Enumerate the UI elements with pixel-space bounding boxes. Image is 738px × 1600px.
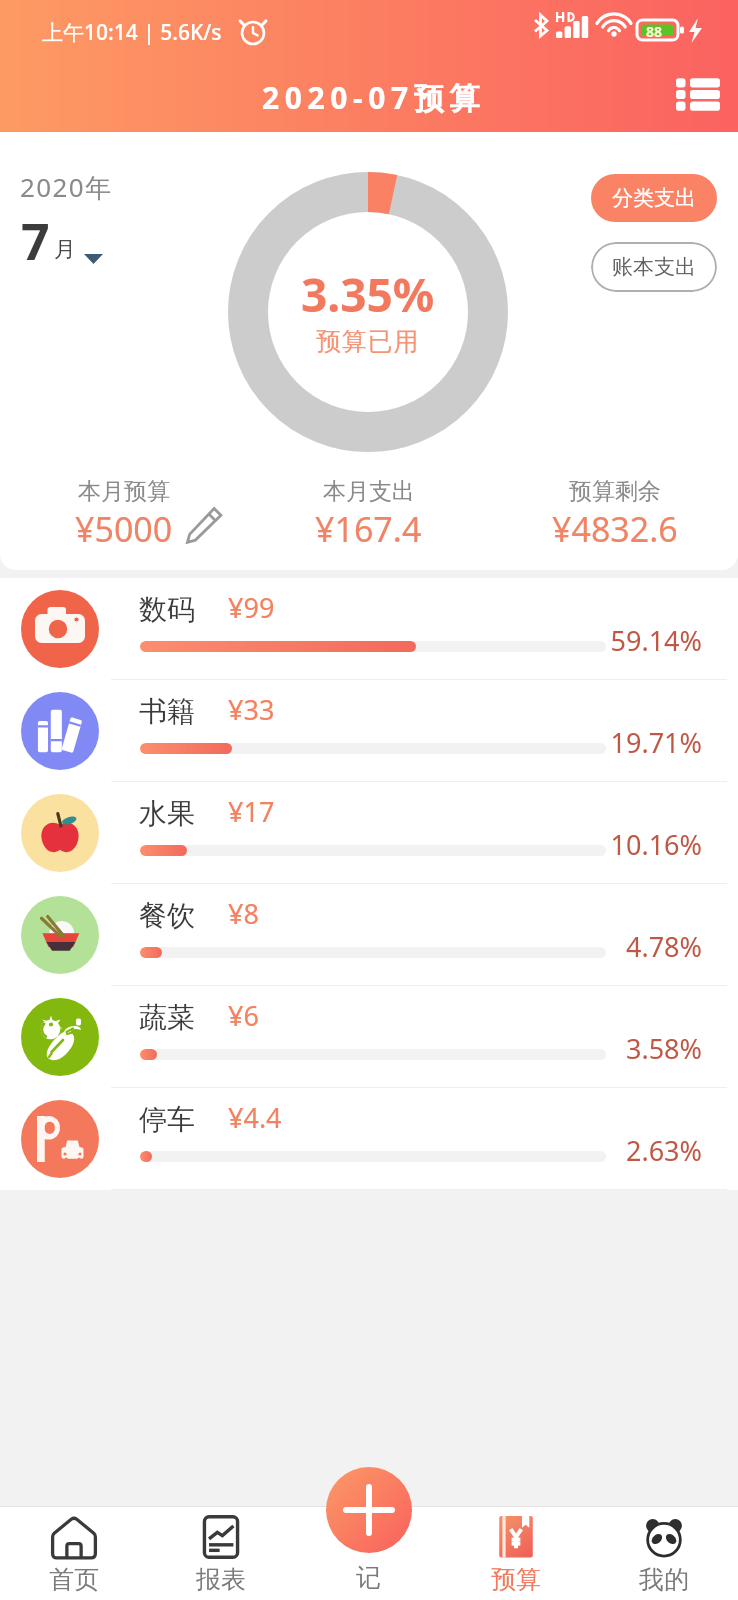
button[interactable]: 报表 [147, 1507, 294, 1600]
button[interactable]: 账本支出 [591, 242, 717, 292]
button[interactable]: Menu [664, 66, 732, 122]
staticText: ¥17 [228, 793, 275, 830]
staticText: 上午10:14 | 5.6K/s [42, 18, 222, 47]
staticText: 预算 [491, 1564, 541, 1595]
staticText: ¥4.4 [228, 1099, 282, 1136]
staticText: 数码 [139, 592, 195, 627]
staticText: 蔬菜 [139, 1000, 195, 1035]
staticText: 59.14% [586, 622, 702, 659]
button[interactable]: 我的 [590, 1507, 738, 1600]
staticText: 我的 [639, 1564, 689, 1595]
staticText: ¥33 [228, 691, 275, 728]
staticText: 账本支出 [612, 254, 696, 280]
button[interactable]: 书籍 [0, 680, 738, 782]
button[interactable]: 停车 [0, 1088, 738, 1190]
staticText: 停车 [139, 1102, 195, 1137]
staticText: ¥167.4 [315, 506, 422, 552]
staticText: ¥8 [228, 895, 259, 932]
staticText: 本月支出 [323, 477, 415, 506]
staticText: 水果 [139, 796, 195, 831]
staticText: ¥5000 [75, 506, 173, 552]
button[interactable]: 分类支出 [591, 174, 717, 222]
staticText: 分类支出 [612, 185, 696, 211]
staticText: 餐饮 [139, 898, 195, 933]
button[interactable]: 数码 [0, 578, 738, 680]
staticText: ¥4832.6 [552, 506, 678, 552]
staticText: 预算已用 [316, 326, 420, 357]
staticText: 书籍 [139, 694, 195, 729]
button[interactable]: 餐饮 [0, 884, 738, 986]
staticText: 3.58% [586, 1030, 702, 1067]
staticText: 7 [21, 207, 50, 269]
button[interactable]: 蔬菜 [0, 986, 738, 1088]
staticText: 10.16% [586, 826, 702, 863]
staticText: 88 [646, 22, 663, 41]
button[interactable]: Add record [326, 1467, 412, 1553]
staticText: ¥99 [228, 589, 275, 626]
staticText: 首页 [49, 1564, 99, 1595]
staticText: 4.78% [586, 928, 702, 965]
button[interactable]: 7 [12, 208, 132, 270]
staticText: ¥6 [228, 997, 259, 1034]
staticText: 本月预算 [78, 477, 170, 506]
button[interactable]: 记 [294, 1507, 442, 1600]
staticText: 预算剩余 [569, 477, 661, 506]
staticText: 2020年 [20, 169, 113, 205]
button[interactable]: 水果 [0, 782, 738, 884]
button[interactable]: 首页 [0, 1507, 147, 1600]
staticText: 记 [356, 1562, 381, 1593]
staticText: 月 [54, 236, 76, 264]
staticText: 2020-07预算 [262, 77, 485, 118]
staticText: 报表 [196, 1564, 246, 1595]
staticText: 3.35% [301, 263, 435, 326]
staticText: 19.71% [586, 724, 702, 761]
button[interactable]: 预算 [442, 1507, 590, 1600]
staticText: 2.63% [586, 1132, 702, 1169]
button[interactable]: Edit budget [182, 503, 226, 547]
